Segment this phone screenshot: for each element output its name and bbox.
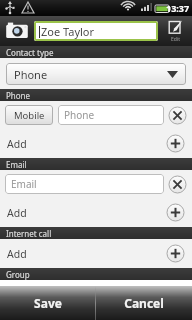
button[interactable]: Email <box>5 174 164 194</box>
staticText: Group <box>6 269 30 280</box>
staticText: Save <box>34 295 62 311</box>
staticText: Cancel <box>124 295 164 311</box>
staticText: Edit <box>171 36 180 43</box>
staticText: Phone <box>14 67 167 82</box>
button[interactable]: Edit <box>158 16 192 46</box>
button[interactable]: Cancel <box>96 286 192 320</box>
staticText: Phone <box>64 108 95 122</box>
button[interactable]: Zoe Taylor <box>34 21 158 41</box>
staticText: Internet call <box>6 228 52 239</box>
button[interactable]: Remove <box>168 175 187 194</box>
button[interactable]: Add <box>0 129 192 158</box>
staticText: 13:37 <box>166 2 190 14</box>
button[interactable]: Remove <box>168 106 187 125</box>
button[interactable]: Mobile <box>5 105 53 125</box>
staticText: Email <box>11 177 37 191</box>
staticText: Contact type <box>6 47 54 58</box>
button[interactable]: Save <box>0 286 95 320</box>
button[interactable]: Phone <box>6 63 186 85</box>
button[interactable]: Add <box>0 198 192 227</box>
button[interactable]: Add contact photo <box>0 16 34 46</box>
staticText: Add <box>7 137 166 151</box>
staticText: Phone <box>6 90 31 101</box>
button[interactable]: Add <box>0 239 192 268</box>
button[interactable]: Phone <box>58 105 164 125</box>
staticText: Email <box>6 159 27 170</box>
staticText: Add <box>7 247 166 261</box>
staticText: Add <box>7 206 166 220</box>
staticText: Mobile <box>14 109 45 122</box>
staticText: Zoe Taylor <box>41 24 95 39</box>
